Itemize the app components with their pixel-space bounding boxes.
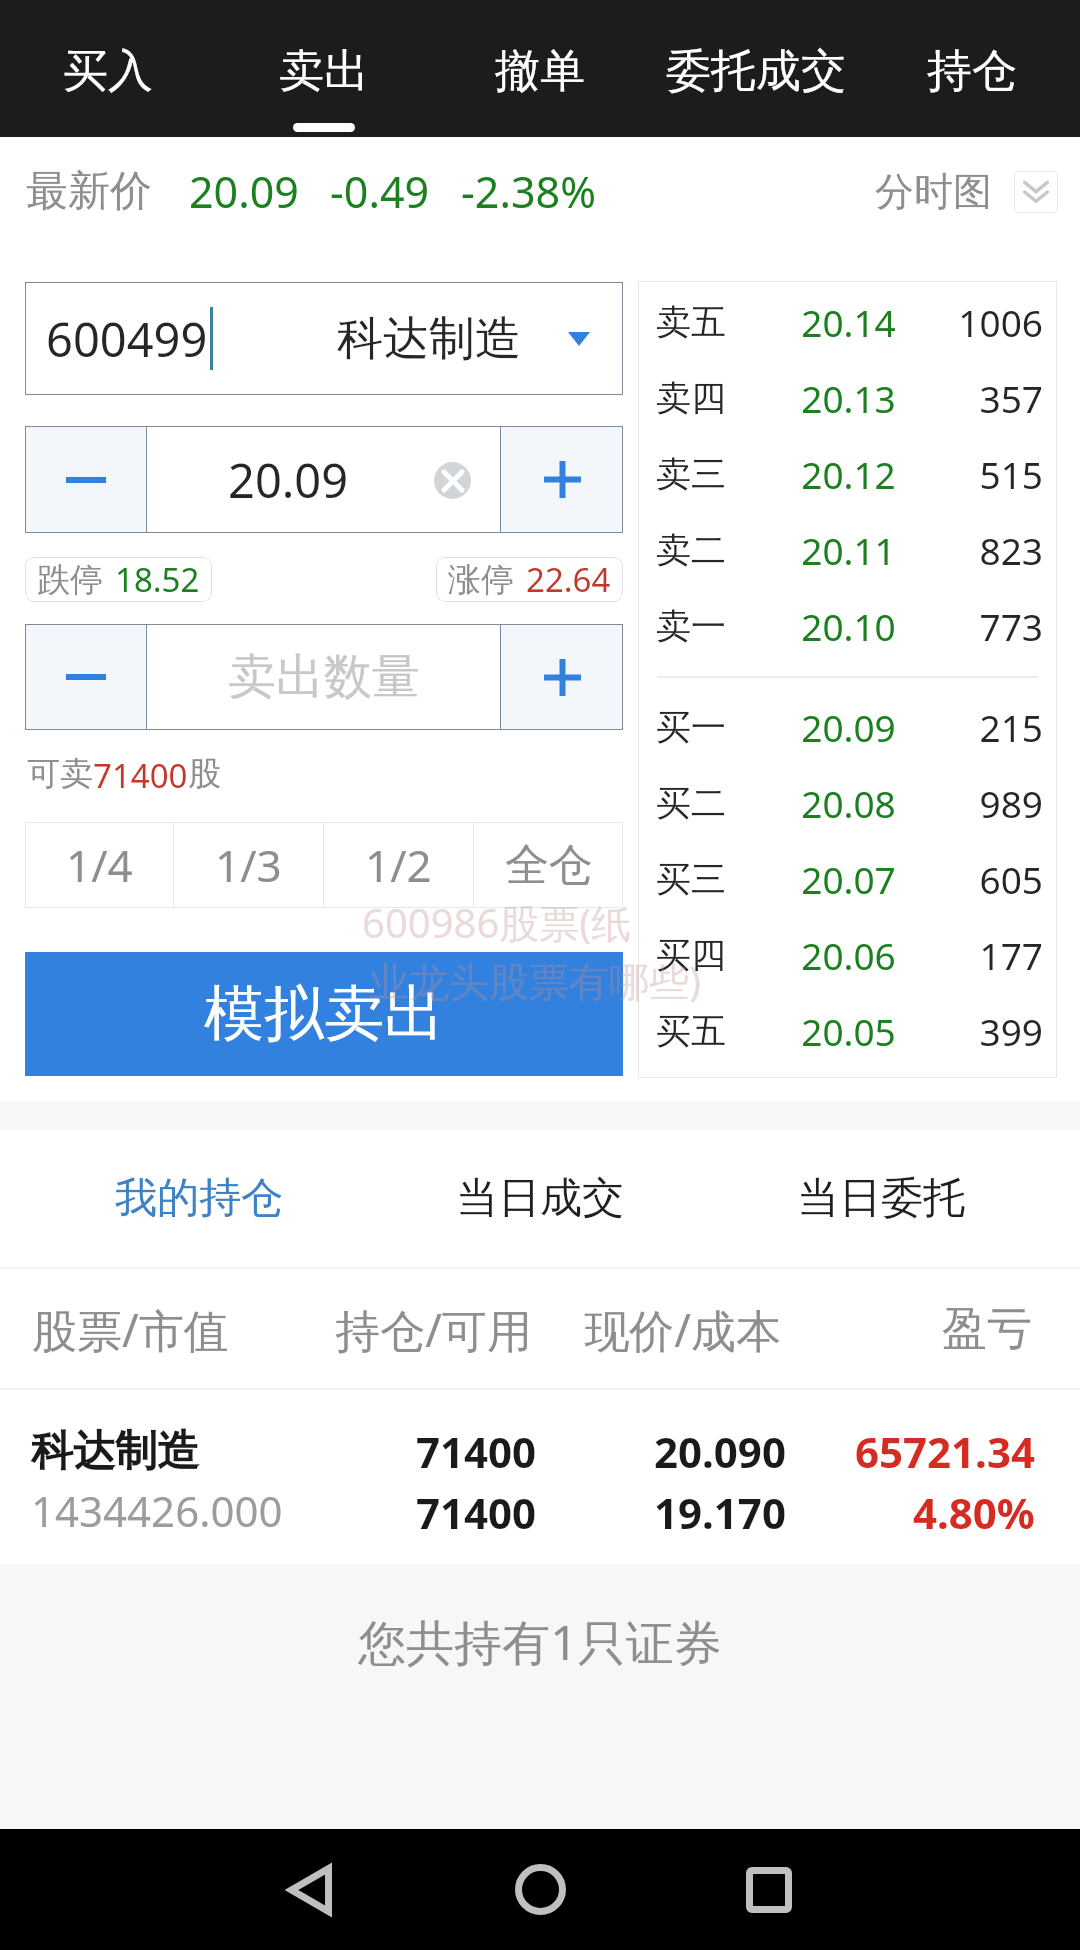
staticText: 买三 xyxy=(656,857,768,901)
staticText: 1006 xyxy=(929,297,1043,347)
staticText: 20.09 xyxy=(228,448,349,512)
button[interactable]: 卖一 xyxy=(656,588,1043,664)
staticText: 盈亏 xyxy=(781,1301,1032,1358)
button[interactable]: 600499 xyxy=(25,282,623,395)
staticText: 最新价 xyxy=(26,165,152,218)
button[interactable]: 分时图 xyxy=(875,167,1058,216)
staticText: 当日委托 xyxy=(797,1172,965,1225)
button[interactable]: 模拟卖出 xyxy=(25,952,623,1076)
staticText: 持仓 xyxy=(864,43,1080,100)
button[interactable]: Home xyxy=(470,1829,610,1950)
button[interactable]: 卖三 xyxy=(656,436,1043,512)
staticText: 20.11 xyxy=(768,525,929,575)
staticText: 跌停 xyxy=(37,559,103,601)
button[interactable]: 卖四 xyxy=(656,360,1043,436)
staticText: 215 xyxy=(929,702,1043,752)
staticText: 卖二 xyxy=(656,528,768,572)
button[interactable]: 买一 xyxy=(656,689,1043,765)
staticText: 4.80% xyxy=(913,1484,1035,1541)
staticText: 20.090 xyxy=(654,1423,786,1480)
button[interactable]: 卖出 xyxy=(216,0,432,137)
staticText: 22.64 xyxy=(526,557,611,602)
staticText: -0.49 xyxy=(330,162,430,221)
staticText: 1/3 xyxy=(215,835,282,895)
staticText: 我的持仓 xyxy=(115,1172,283,1225)
staticText: 20.10 xyxy=(768,601,929,651)
other: Expand chart xyxy=(1014,171,1058,213)
staticText: 357 xyxy=(929,373,1043,423)
staticText: 20.06 xyxy=(768,930,929,980)
button[interactable]: 撤单 xyxy=(432,0,648,137)
staticText: 515 xyxy=(929,449,1043,499)
button[interactable]: Back xyxy=(240,1829,380,1950)
staticText: 持仓/可用 xyxy=(277,1299,532,1360)
staticText: 600499 xyxy=(46,307,208,371)
staticText: 当日成交 xyxy=(456,1172,624,1225)
button[interactable]: 持仓 xyxy=(864,0,1080,137)
staticText: 20.14 xyxy=(768,297,929,347)
button[interactable]: 买二 xyxy=(656,765,1043,841)
staticText: 600986股票(纸 xyxy=(362,895,632,950)
button[interactable]: Decrease xyxy=(25,624,146,730)
staticText: -2.38% xyxy=(461,162,596,221)
staticText: 18.52 xyxy=(115,557,200,602)
staticText: 71400 xyxy=(416,1484,537,1541)
staticText: 科达制造 xyxy=(31,1425,199,1478)
button[interactable]: 全仓 xyxy=(474,822,623,908)
button[interactable]: 买三 xyxy=(656,841,1043,917)
staticText: 65721.34 xyxy=(855,1423,1035,1480)
button[interactable]: 涨停 xyxy=(436,557,623,602)
button[interactable]: 当日成交 xyxy=(369,1130,710,1267)
staticText: 撤单 xyxy=(432,43,648,100)
button[interactable]: 卖五 xyxy=(656,284,1043,360)
staticText: 20.09 xyxy=(768,702,929,752)
button[interactable]: 1/2 xyxy=(324,822,473,908)
staticText: 卖四 xyxy=(656,376,768,420)
staticText: 买四 xyxy=(656,933,768,977)
staticText: 买入 xyxy=(0,43,216,100)
staticText: 71400 xyxy=(416,1423,537,1480)
staticText: 823 xyxy=(929,525,1043,575)
staticText: 20.08 xyxy=(768,778,929,828)
staticText: 773 xyxy=(929,601,1043,651)
button[interactable]: Increase xyxy=(501,624,623,730)
button[interactable]: 1/4 xyxy=(25,822,173,908)
staticText: 卖出 xyxy=(216,43,432,100)
staticText: 989 xyxy=(929,778,1043,828)
staticText: 委托成交 xyxy=(648,43,864,100)
staticText: 1434426.000 xyxy=(31,1482,283,1539)
staticText: 1/2 xyxy=(365,835,432,895)
button[interactable]: 1/3 xyxy=(174,822,323,908)
button[interactable]: Increase xyxy=(501,426,623,533)
button[interactable]: Decrease xyxy=(25,426,146,533)
staticText: 业龙头股票有哪些) xyxy=(369,953,701,1008)
staticText: 买五 xyxy=(656,1009,768,1053)
button[interactable]: 买五 xyxy=(656,993,1043,1069)
staticText: 20.13 xyxy=(768,373,929,423)
staticText: 177 xyxy=(929,930,1043,980)
staticText: 71400 xyxy=(93,753,188,798)
staticText: 现价/成本 xyxy=(532,1299,781,1360)
staticText: 19.170 xyxy=(654,1484,786,1541)
button[interactable]: Clear xyxy=(434,462,471,499)
staticText: 卖三 xyxy=(656,452,768,496)
staticText: 20.07 xyxy=(768,854,929,904)
button[interactable]: 当日委托 xyxy=(710,1130,1051,1267)
staticText: 股票/市值 xyxy=(32,1299,277,1360)
button[interactable]: 跌停 xyxy=(25,557,212,602)
staticText: 模拟卖出 xyxy=(204,976,444,1052)
staticText: 20.12 xyxy=(768,449,929,499)
button[interactable]: 委托成交 xyxy=(648,0,864,137)
staticText: 可卖 xyxy=(27,753,93,795)
staticText: 卖一 xyxy=(656,604,768,648)
button[interactable]: 买四 xyxy=(656,917,1043,993)
staticText: 605 xyxy=(929,854,1043,904)
staticText: 股 xyxy=(188,753,221,795)
button[interactable]: 买入 xyxy=(0,0,216,137)
staticText: 20.09 xyxy=(189,162,299,221)
staticText: 您共持有1只证券 xyxy=(0,1609,1080,1675)
staticText: 全仓 xyxy=(505,838,593,893)
button[interactable]: 我的持仓 xyxy=(29,1130,369,1267)
button[interactable]: Recent apps xyxy=(699,1829,839,1950)
button[interactable]: 卖二 xyxy=(656,512,1043,588)
